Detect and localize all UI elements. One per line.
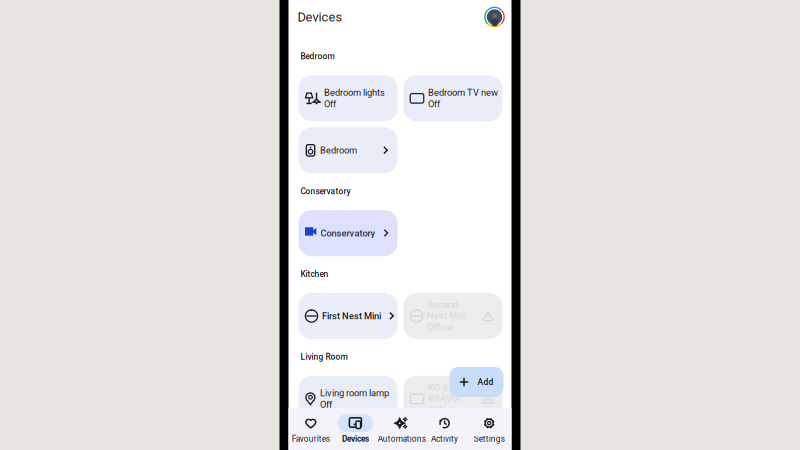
staticText: Bedroom [300,51,334,61]
staticText: Living room lamp [320,388,389,399]
button[interactable]: Devices [333,408,378,450]
button[interactable]: Bedroom lights [298,75,397,121]
button[interactable]: Account [484,6,505,27]
staticText: Conservatory [300,186,350,196]
button[interactable]: Bedroom [298,127,397,173]
staticText: Settings [474,434,505,444]
button[interactable]: KD-65A1 BRAVIA [403,376,502,422]
staticText: Automations [378,434,426,444]
button[interactable]: Bedroom TV new [403,75,502,121]
staticText: Devices [297,9,342,24]
staticText: Add [477,377,493,387]
staticText: Favourites [292,434,330,444]
button[interactable]: Settings [467,408,511,450]
staticText: Bedroom TV new [428,87,498,98]
button[interactable]: Automations [378,408,422,450]
staticText: Second Nest Mini [427,299,466,321]
staticText: Offline [428,405,454,415]
staticText: Activity [431,434,458,444]
staticText: First Nest Mini [322,311,381,321]
staticText: Kitchen [300,269,328,279]
staticText: Off [428,99,440,109]
button[interactable]: Activity [422,408,467,450]
staticText: Devices [342,434,369,444]
staticText: KD-65A1 BRAVIA [428,382,464,404]
staticText: Offline [427,322,453,333]
staticText: Bedroom lights [324,87,385,98]
staticText: Living Room [300,352,347,362]
button[interactable]: First Nest Mini [298,293,397,339]
button[interactable]: Living room lamp [298,376,397,422]
staticText: Off [320,399,332,410]
button[interactable]: Conservatory [298,210,397,256]
button[interactable]: Favourites [288,408,333,450]
staticText: Off [324,99,336,109]
button[interactable]: Second Nest Mini [403,293,502,339]
button[interactable]: Add [449,367,503,397]
staticText: Bedroom [320,145,357,156]
staticText: Conservatory [320,228,375,239]
